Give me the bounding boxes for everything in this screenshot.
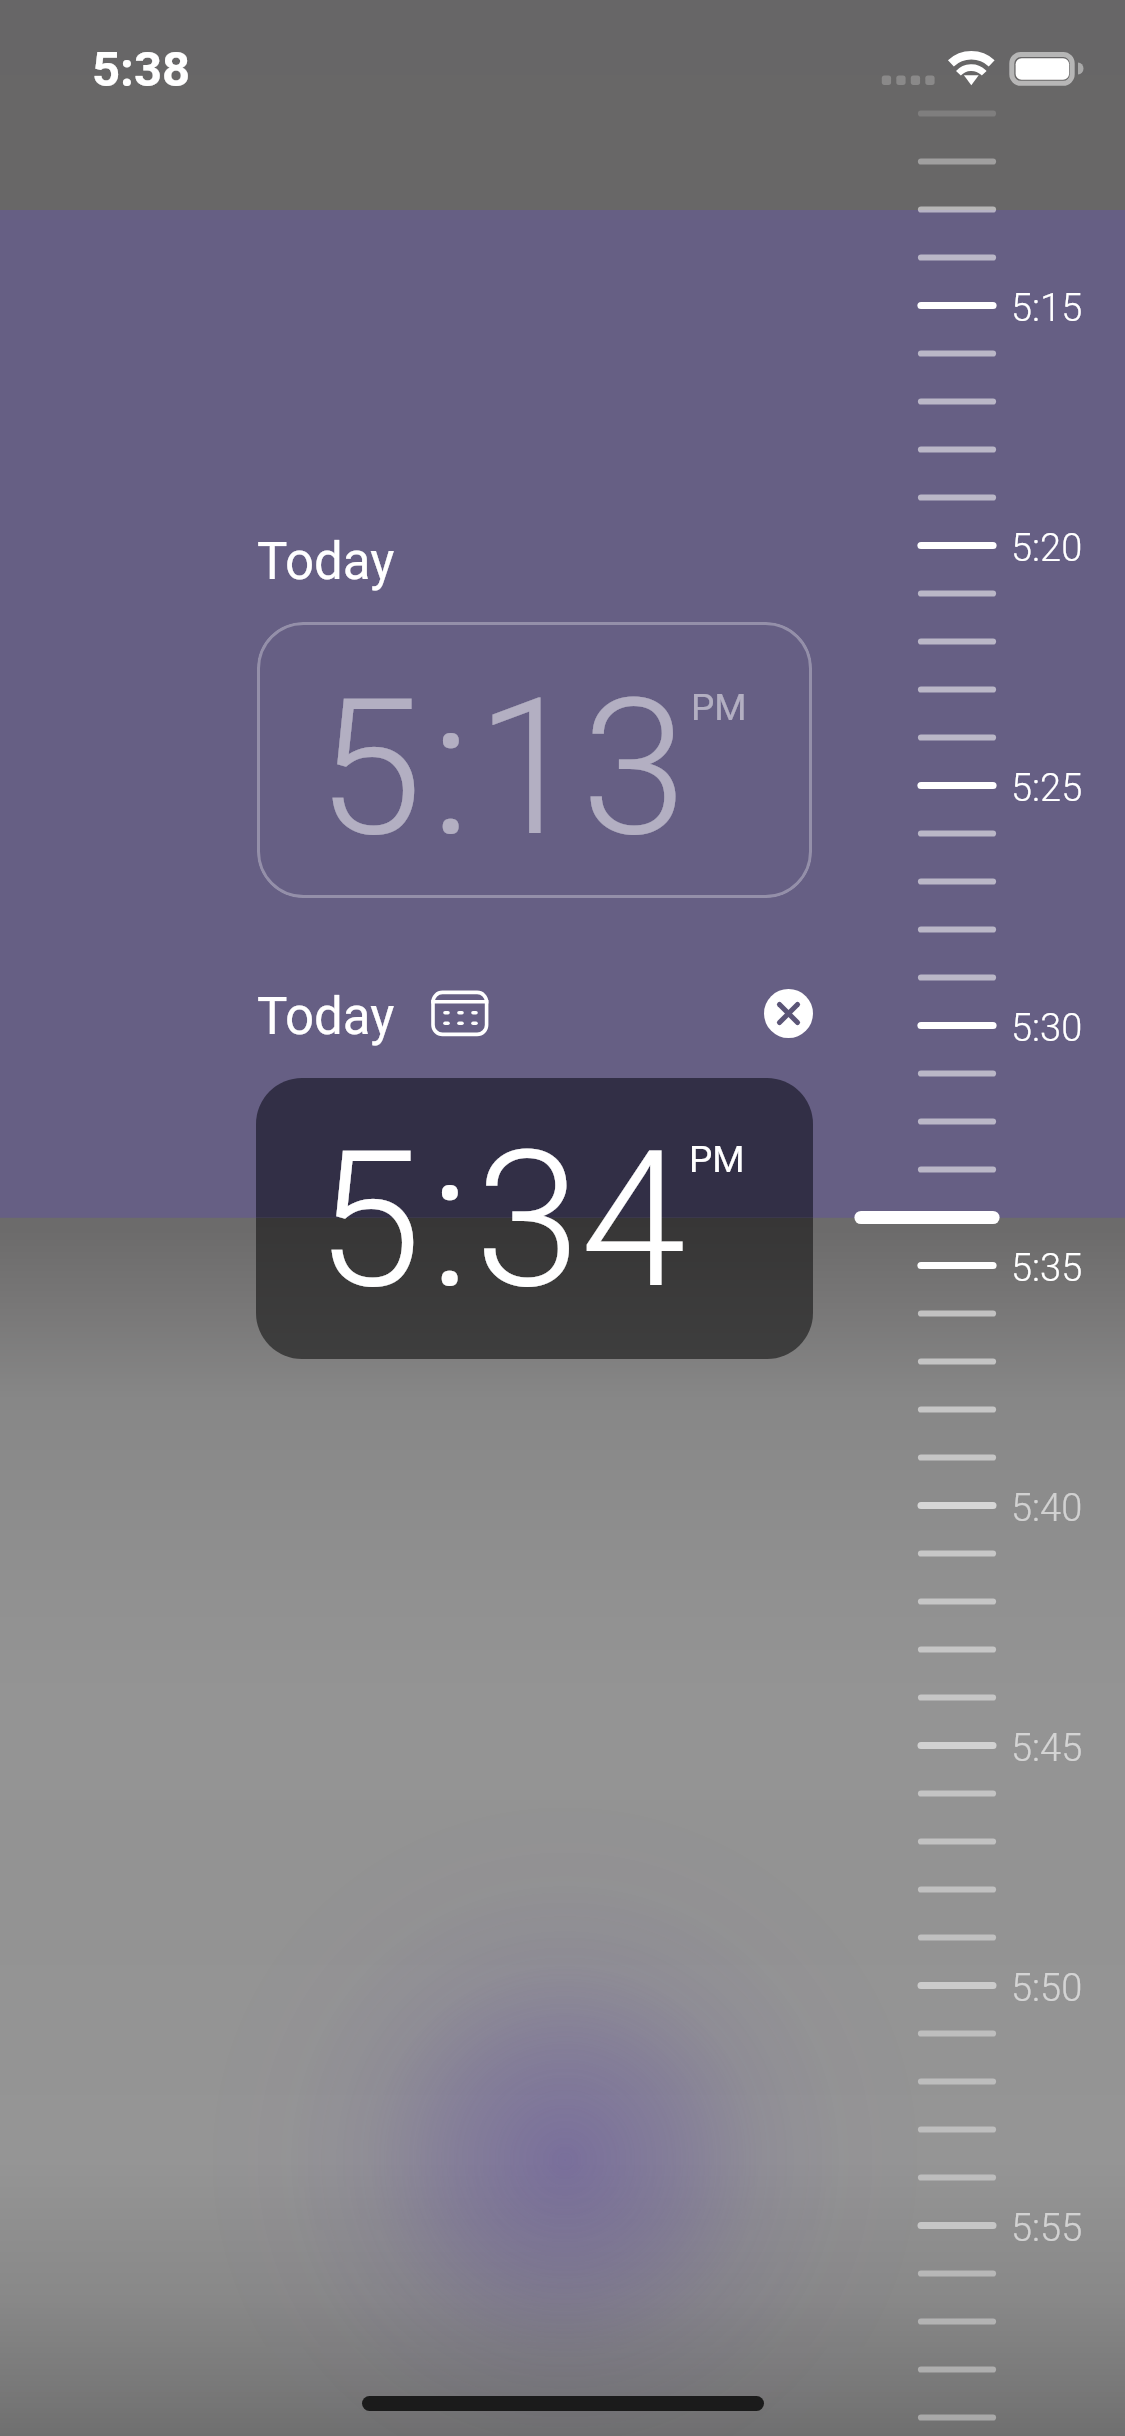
staticText: Today [257, 987, 395, 1047]
staticText: 34 [475, 1109, 686, 1332]
staticText: 5:38 [92, 41, 191, 98]
staticText: PM [689, 1138, 745, 1181]
staticText: 5 [317, 657, 423, 880]
staticText: 5:25 [1011, 766, 1083, 811]
button[interactable]: Choose date [424, 982, 496, 1046]
staticText: 5:20 [1011, 526, 1083, 571]
staticText: 5:45 [1011, 1726, 1083, 1771]
button[interactable]: Today [250, 525, 400, 595]
button[interactable]: 5 [256, 1078, 813, 1359]
staticText: : [430, 1109, 470, 1332]
staticText: 5:35 [1011, 1246, 1083, 1291]
staticText: 5:50 [1011, 1966, 1083, 2011]
staticText: : [431, 657, 471, 880]
staticText: 5 [316, 1109, 422, 1332]
staticText: Today [257, 532, 395, 592]
staticText: 13 [476, 657, 687, 880]
staticText: 5:15 [1011, 286, 1083, 331]
staticText: PM [691, 686, 747, 729]
staticText: 5:55 [1011, 2206, 1083, 2251]
staticText: 5:40 [1011, 1486, 1083, 1531]
button[interactable]: 5 [257, 622, 812, 898]
button[interactable]: Today [250, 980, 496, 1050]
button[interactable]: Close [764, 989, 813, 1038]
staticText: 5:30 [1011, 1006, 1083, 1051]
